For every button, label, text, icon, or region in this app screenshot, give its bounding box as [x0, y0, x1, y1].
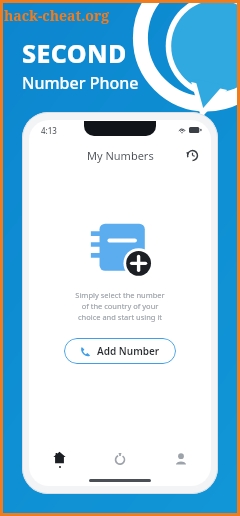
staticText: hack-cheat.org	[4, 6, 110, 25]
button[interactable]: Add Number	[64, 338, 176, 364]
button[interactable]: Recent	[89, 444, 150, 474]
staticText: 4:13	[41, 125, 57, 136]
staticText: Simply select the number of the country …	[75, 290, 165, 322]
staticText: Number Phone	[22, 72, 139, 94]
button[interactable]: History	[181, 144, 203, 166]
staticText: SECOND	[22, 36, 127, 70]
button[interactable]: Profile	[150, 444, 211, 474]
button[interactable]: Home	[29, 444, 89, 474]
staticText: Add Number	[97, 344, 160, 358]
staticText: My Numbers	[87, 148, 154, 163]
